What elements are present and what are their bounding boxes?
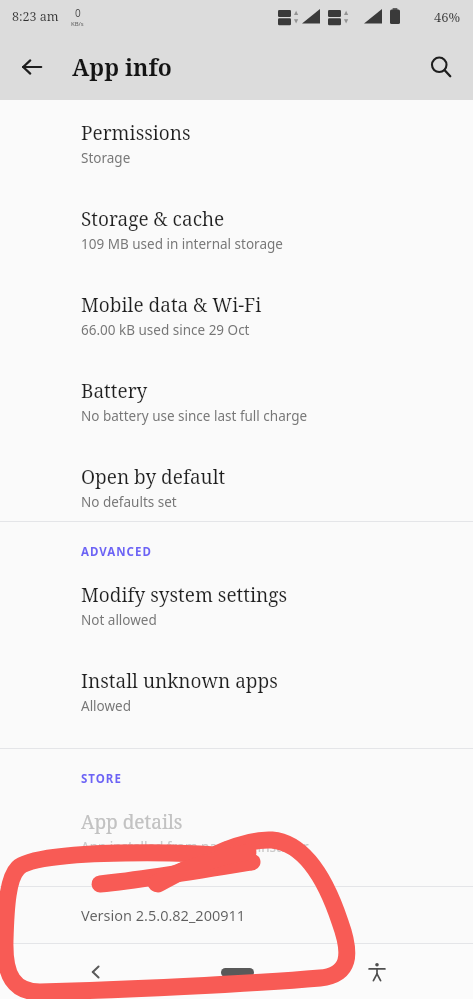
staticText: Open by default	[81, 464, 226, 490]
button[interactable]: Storage & cache	[0, 196, 473, 263]
staticText: App details	[81, 809, 183, 835]
button[interactable]: App details	[0, 799, 473, 866]
button[interactable]: Modify system settings	[0, 572, 473, 639]
button[interactable]: Battery	[0, 368, 473, 435]
staticText: 46%	[434, 8, 461, 26]
staticText: Install unknown apps	[81, 668, 278, 694]
button[interactable]: Search	[419, 45, 463, 89]
staticText: ADVANCED	[81, 544, 152, 560]
staticText: 8:23 am	[12, 8, 59, 25]
staticText: Modify system settings	[81, 582, 288, 608]
button[interactable]: Version 2.5.0.82_200911	[0, 887, 473, 943]
button[interactable]: Open by default	[0, 454, 473, 521]
button[interactable]: Back	[10, 45, 54, 89]
button[interactable]: Back	[74, 950, 118, 994]
button[interactable]: Permissions	[0, 110, 473, 177]
staticText: Mobile data & Wi-Fi	[81, 292, 262, 318]
staticText: Permissions	[81, 120, 191, 146]
button[interactable]: Mobile data & Wi-Fi	[0, 282, 473, 349]
staticText: Version 2.5.0.82_200911	[81, 905, 246, 925]
staticText: KB/s	[71, 20, 84, 28]
staticText: No defaults set	[81, 493, 177, 511]
staticText: No battery use since last full charge	[81, 407, 308, 425]
staticText: Storage	[81, 149, 131, 167]
staticText: Storage & cache	[81, 206, 225, 232]
button[interactable]: Home	[209, 961, 265, 983]
staticText: 0	[75, 6, 81, 20]
staticText: App installed from package installer	[81, 838, 309, 856]
staticText: 66.00 kB used since 29 Oct	[81, 321, 250, 339]
staticText: 109 MB used in internal storage	[81, 235, 283, 253]
button[interactable]: Accessibility	[357, 952, 397, 992]
staticText: Battery	[81, 378, 148, 404]
staticText: STORE	[81, 771, 122, 787]
staticText: Not allowed	[81, 611, 157, 629]
button[interactable]: Install unknown apps	[0, 658, 473, 725]
staticText: Allowed	[81, 697, 132, 715]
staticText: App info	[72, 51, 172, 82]
